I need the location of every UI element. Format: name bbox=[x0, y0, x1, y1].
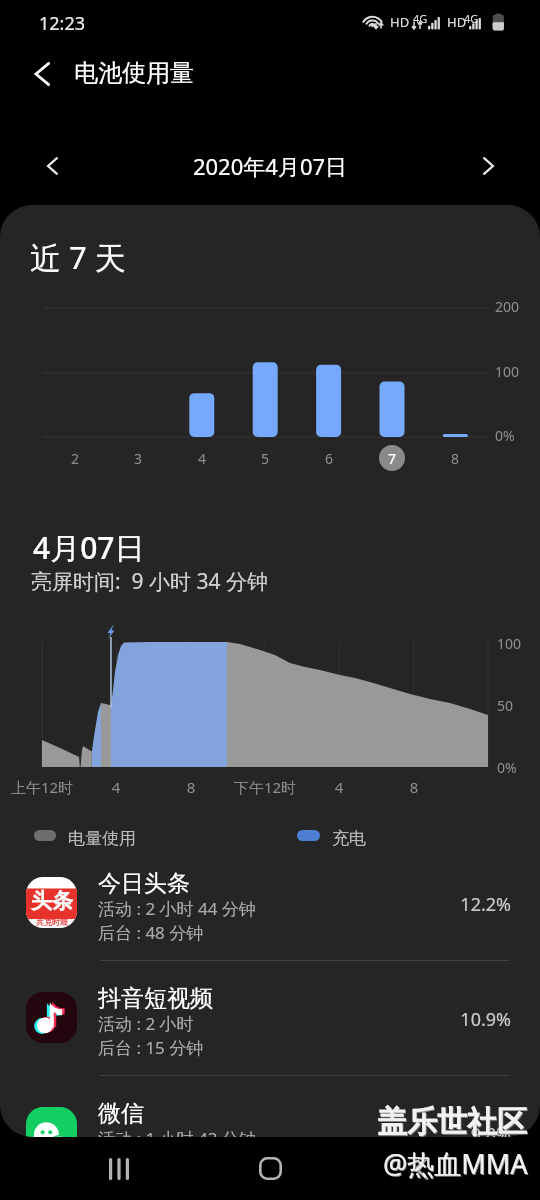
staticText: 100 bbox=[495, 362, 520, 381]
staticText: @热血MMA bbox=[384, 1146, 529, 1183]
staticText: 6 bbox=[309, 449, 349, 468]
staticText: 微信 bbox=[98, 1099, 144, 1128]
staticText: 今日头条 bbox=[98, 869, 190, 898]
staticText: 4月07日 bbox=[33, 527, 145, 568]
staticText: 近 7 天 bbox=[30, 236, 126, 278]
staticText: 2 bbox=[55, 449, 95, 468]
staticText: HD bbox=[447, 13, 467, 31]
staticText: 后台 : 48 分钟 bbox=[98, 921, 204, 944]
staticText: 2020年4月07日 bbox=[0, 151, 540, 181]
staticText: 充电 bbox=[332, 828, 366, 849]
button[interactable]: Back bbox=[391, 1147, 451, 1190]
staticText: 上午12时 bbox=[0, 777, 87, 797]
staticText: HD bbox=[390, 13, 410, 31]
staticText: 8 bbox=[146, 777, 236, 797]
staticText: 头条 bbox=[31, 888, 73, 914]
button[interactable]: Recents bbox=[89, 1147, 149, 1190]
staticText: 3 bbox=[118, 449, 158, 468]
staticText: 电量使用 bbox=[68, 828, 136, 849]
staticText: 亮屏时间: 9 小时 34 分钟 bbox=[31, 567, 268, 596]
button[interactable]: 头条 bbox=[8, 845, 540, 960]
staticText: 7 bbox=[372, 449, 412, 468]
staticText: 盖乐世社区 bbox=[377, 1103, 527, 1141]
button[interactable]: Next day bbox=[465, 143, 511, 189]
staticText: 活动 : 1 小时 43 分钟 bbox=[98, 1127, 256, 1137]
staticText: 共克时艰 bbox=[36, 917, 68, 927]
staticText: 9.8% bbox=[400, 1122, 511, 1137]
staticText: 8 bbox=[435, 449, 475, 468]
staticText: 100 bbox=[497, 634, 522, 653]
staticText: 50 bbox=[497, 696, 514, 715]
staticText: 5 bbox=[245, 449, 285, 468]
button[interactable]: Previous day bbox=[29, 143, 75, 189]
staticText: 12:23 bbox=[39, 11, 86, 36]
staticText: 下午12时 bbox=[220, 777, 310, 797]
staticText: 4 bbox=[182, 449, 222, 468]
staticText: 0% bbox=[495, 426, 515, 445]
staticText: 4 bbox=[71, 777, 161, 797]
staticText: 后台 : 15 分钟 bbox=[98, 1036, 204, 1059]
staticText: 4 bbox=[294, 777, 384, 797]
staticText: 电池使用量 bbox=[74, 58, 194, 88]
staticText: @热血MMA bbox=[383, 1145, 528, 1182]
staticText: 8 bbox=[369, 777, 459, 797]
staticText: 4G bbox=[464, 11, 479, 26]
staticText: 12.2% bbox=[400, 892, 511, 917]
staticText: 抖音短视频 bbox=[98, 984, 213, 1013]
staticText: 200 bbox=[495, 297, 520, 316]
staticText: 活动 : 2 小时 bbox=[98, 1012, 194, 1035]
staticText: 4G bbox=[413, 11, 428, 26]
staticText: 活动 : 2 小时 44 分钟 bbox=[98, 897, 256, 920]
button[interactable]: 抖音短视频 bbox=[8, 960, 540, 1075]
staticText: 盖乐世社区 bbox=[378, 1104, 528, 1142]
button[interactable]: Back bbox=[16, 48, 68, 100]
button[interactable]: Home bbox=[240, 1147, 300, 1190]
staticText: 10.9% bbox=[400, 1007, 511, 1032]
button[interactable]: 微信 bbox=[8, 1075, 540, 1137]
staticText: 0% bbox=[497, 758, 517, 777]
